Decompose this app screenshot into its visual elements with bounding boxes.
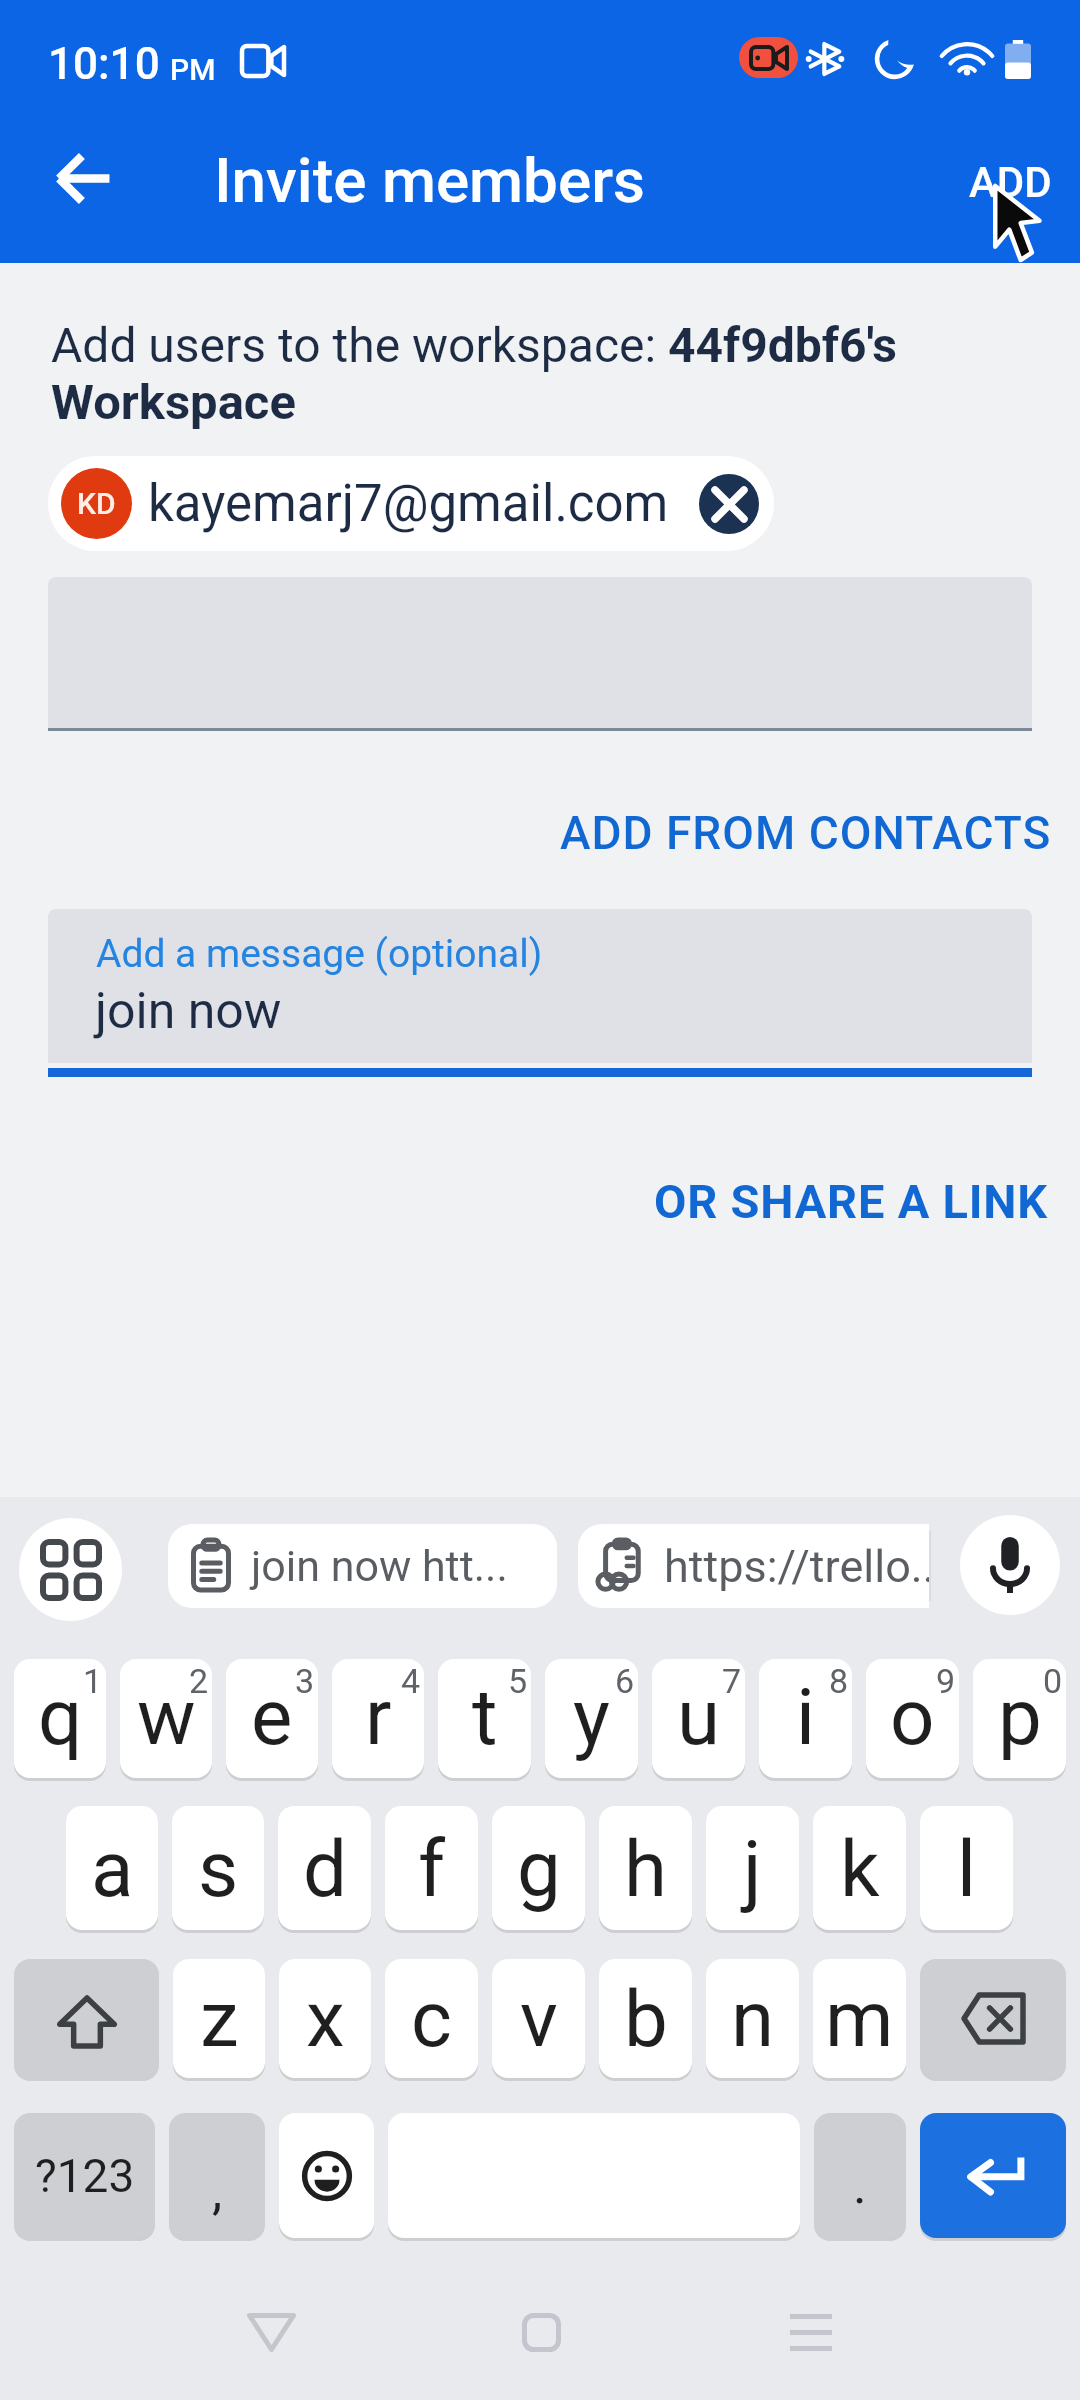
button[interactable]: Voice input [960, 1515, 1060, 1615]
button[interactable]: n [706, 1959, 799, 2078]
button[interactable]: q [14, 1659, 106, 1778]
staticText: j [743, 1824, 762, 1915]
staticText: t [472, 1672, 498, 1763]
button[interactable]: ADD FROM CONTACTS [540, 791, 1072, 875]
button[interactable]: KD [48, 456, 774, 551]
staticText: ADD FROM CONTACTS [560, 806, 1052, 860]
staticText: Workspace [51, 374, 296, 431]
staticText: ADD [969, 158, 1052, 207]
staticText: x [306, 1974, 345, 2065]
button[interactable]: y [545, 1659, 638, 1778]
staticText: Invite members [214, 144, 646, 217]
button[interactable]: Home [471, 2262, 611, 2400]
staticText: n [731, 1974, 775, 2065]
staticText: v [520, 1974, 558, 2065]
staticText: 2 [189, 1661, 209, 1701]
button[interactable]: p [973, 1659, 1066, 1778]
button[interactable]: Shift [14, 1959, 159, 2078]
staticText: f [418, 1824, 446, 1915]
staticText: l [957, 1824, 976, 1915]
staticText: 3 [295, 1661, 315, 1701]
staticText: k [840, 1824, 880, 1915]
button[interactable]: t [438, 1659, 531, 1778]
staticText: Add a message (optional) [96, 931, 543, 977]
button[interactable]: l [920, 1806, 1013, 1930]
staticText: w [137, 1672, 196, 1763]
staticText: p [998, 1672, 1042, 1763]
button[interactable]: v [492, 1959, 585, 2078]
button[interactable]: j [706, 1806, 799, 1930]
button[interactable]: w [120, 1659, 212, 1778]
button[interactable]: h [599, 1806, 692, 1930]
button[interactable]: Enter [920, 2113, 1066, 2238]
button[interactable]: Remove recipient [699, 474, 759, 534]
staticText: 4 [401, 1661, 421, 1701]
button[interactable]: u [652, 1659, 745, 1778]
button[interactable]: e [226, 1659, 318, 1778]
staticText: d [303, 1824, 347, 1915]
staticText: a [91, 1824, 134, 1915]
staticText: https://trello... [664, 1540, 929, 1593]
staticText: join now htt... [251, 1541, 508, 1591]
button[interactable]: Backspace [920, 1959, 1066, 2078]
button[interactable]: s [172, 1806, 264, 1930]
button[interactable]: ?123 [14, 2113, 155, 2238]
staticText: 9 [936, 1661, 956, 1701]
button[interactable]: r [332, 1659, 424, 1778]
button[interactable]: https://trello... [578, 1524, 929, 1608]
staticText: 10:10 [48, 38, 160, 90]
staticText: i [796, 1672, 815, 1763]
staticText: KD [77, 486, 116, 521]
staticText: h [624, 1824, 667, 1915]
button[interactable]: g [492, 1806, 585, 1930]
staticText: c [411, 1974, 452, 2065]
staticText: ?123 [35, 2149, 135, 2203]
button[interactable]: i [759, 1659, 852, 1778]
button[interactable]: Back [201, 2262, 341, 2400]
button[interactable]: b [599, 1959, 692, 2078]
staticText: s [198, 1824, 239, 1915]
button[interactable]: k [813, 1806, 906, 1930]
staticText: e [251, 1672, 293, 1763]
staticText: 1 [83, 1661, 103, 1701]
button[interactable]: x [279, 1959, 371, 2078]
staticText: 7 [722, 1661, 742, 1701]
staticText: PM [170, 52, 216, 87]
button[interactable]: Keyboard toolbar [19, 1518, 122, 1621]
staticText: y [573, 1672, 610, 1763]
staticText: , [212, 2161, 223, 2222]
button[interactable]: o [866, 1659, 959, 1778]
staticText: b [624, 1974, 668, 2065]
button[interactable]: join now htt... [168, 1524, 557, 1608]
button[interactable]: Back [28, 123, 138, 233]
button[interactable]: Emoji [279, 2113, 374, 2238]
staticText: 6 [615, 1661, 635, 1701]
staticText: . [853, 2155, 867, 2216]
button[interactable]: z [173, 1959, 265, 2078]
staticText: 5 [508, 1661, 528, 1701]
staticText: join now [95, 982, 282, 1041]
button[interactable]: f [385, 1806, 478, 1930]
staticText: m [825, 1974, 894, 2065]
button[interactable]: , [169, 2113, 265, 2238]
staticText: q [38, 1672, 83, 1763]
button[interactable]: ADD [939, 136, 1080, 229]
button[interactable]: Add a message (optional) [48, 909, 1032, 1063]
staticText: u [677, 1672, 720, 1763]
staticText: o [890, 1672, 935, 1763]
staticText: g [517, 1824, 561, 1915]
button[interactable]: Recent apps [741, 2262, 881, 2400]
button[interactable]: m [813, 1959, 906, 2078]
staticText: OR SHARE A LINK [654, 1174, 1049, 1229]
button[interactable]: OR SHARE A LINK [634, 1159, 1069, 1244]
staticText: z [200, 1974, 239, 2065]
button[interactable]: c [385, 1959, 478, 2078]
staticText: 8 [829, 1661, 849, 1701]
button[interactable]: . [814, 2113, 906, 2238]
button[interactable]: d [278, 1806, 371, 1930]
staticText: 44f9dbf6's [668, 317, 897, 373]
button[interactable]: a [66, 1806, 158, 1930]
staticText: r [365, 1672, 392, 1763]
